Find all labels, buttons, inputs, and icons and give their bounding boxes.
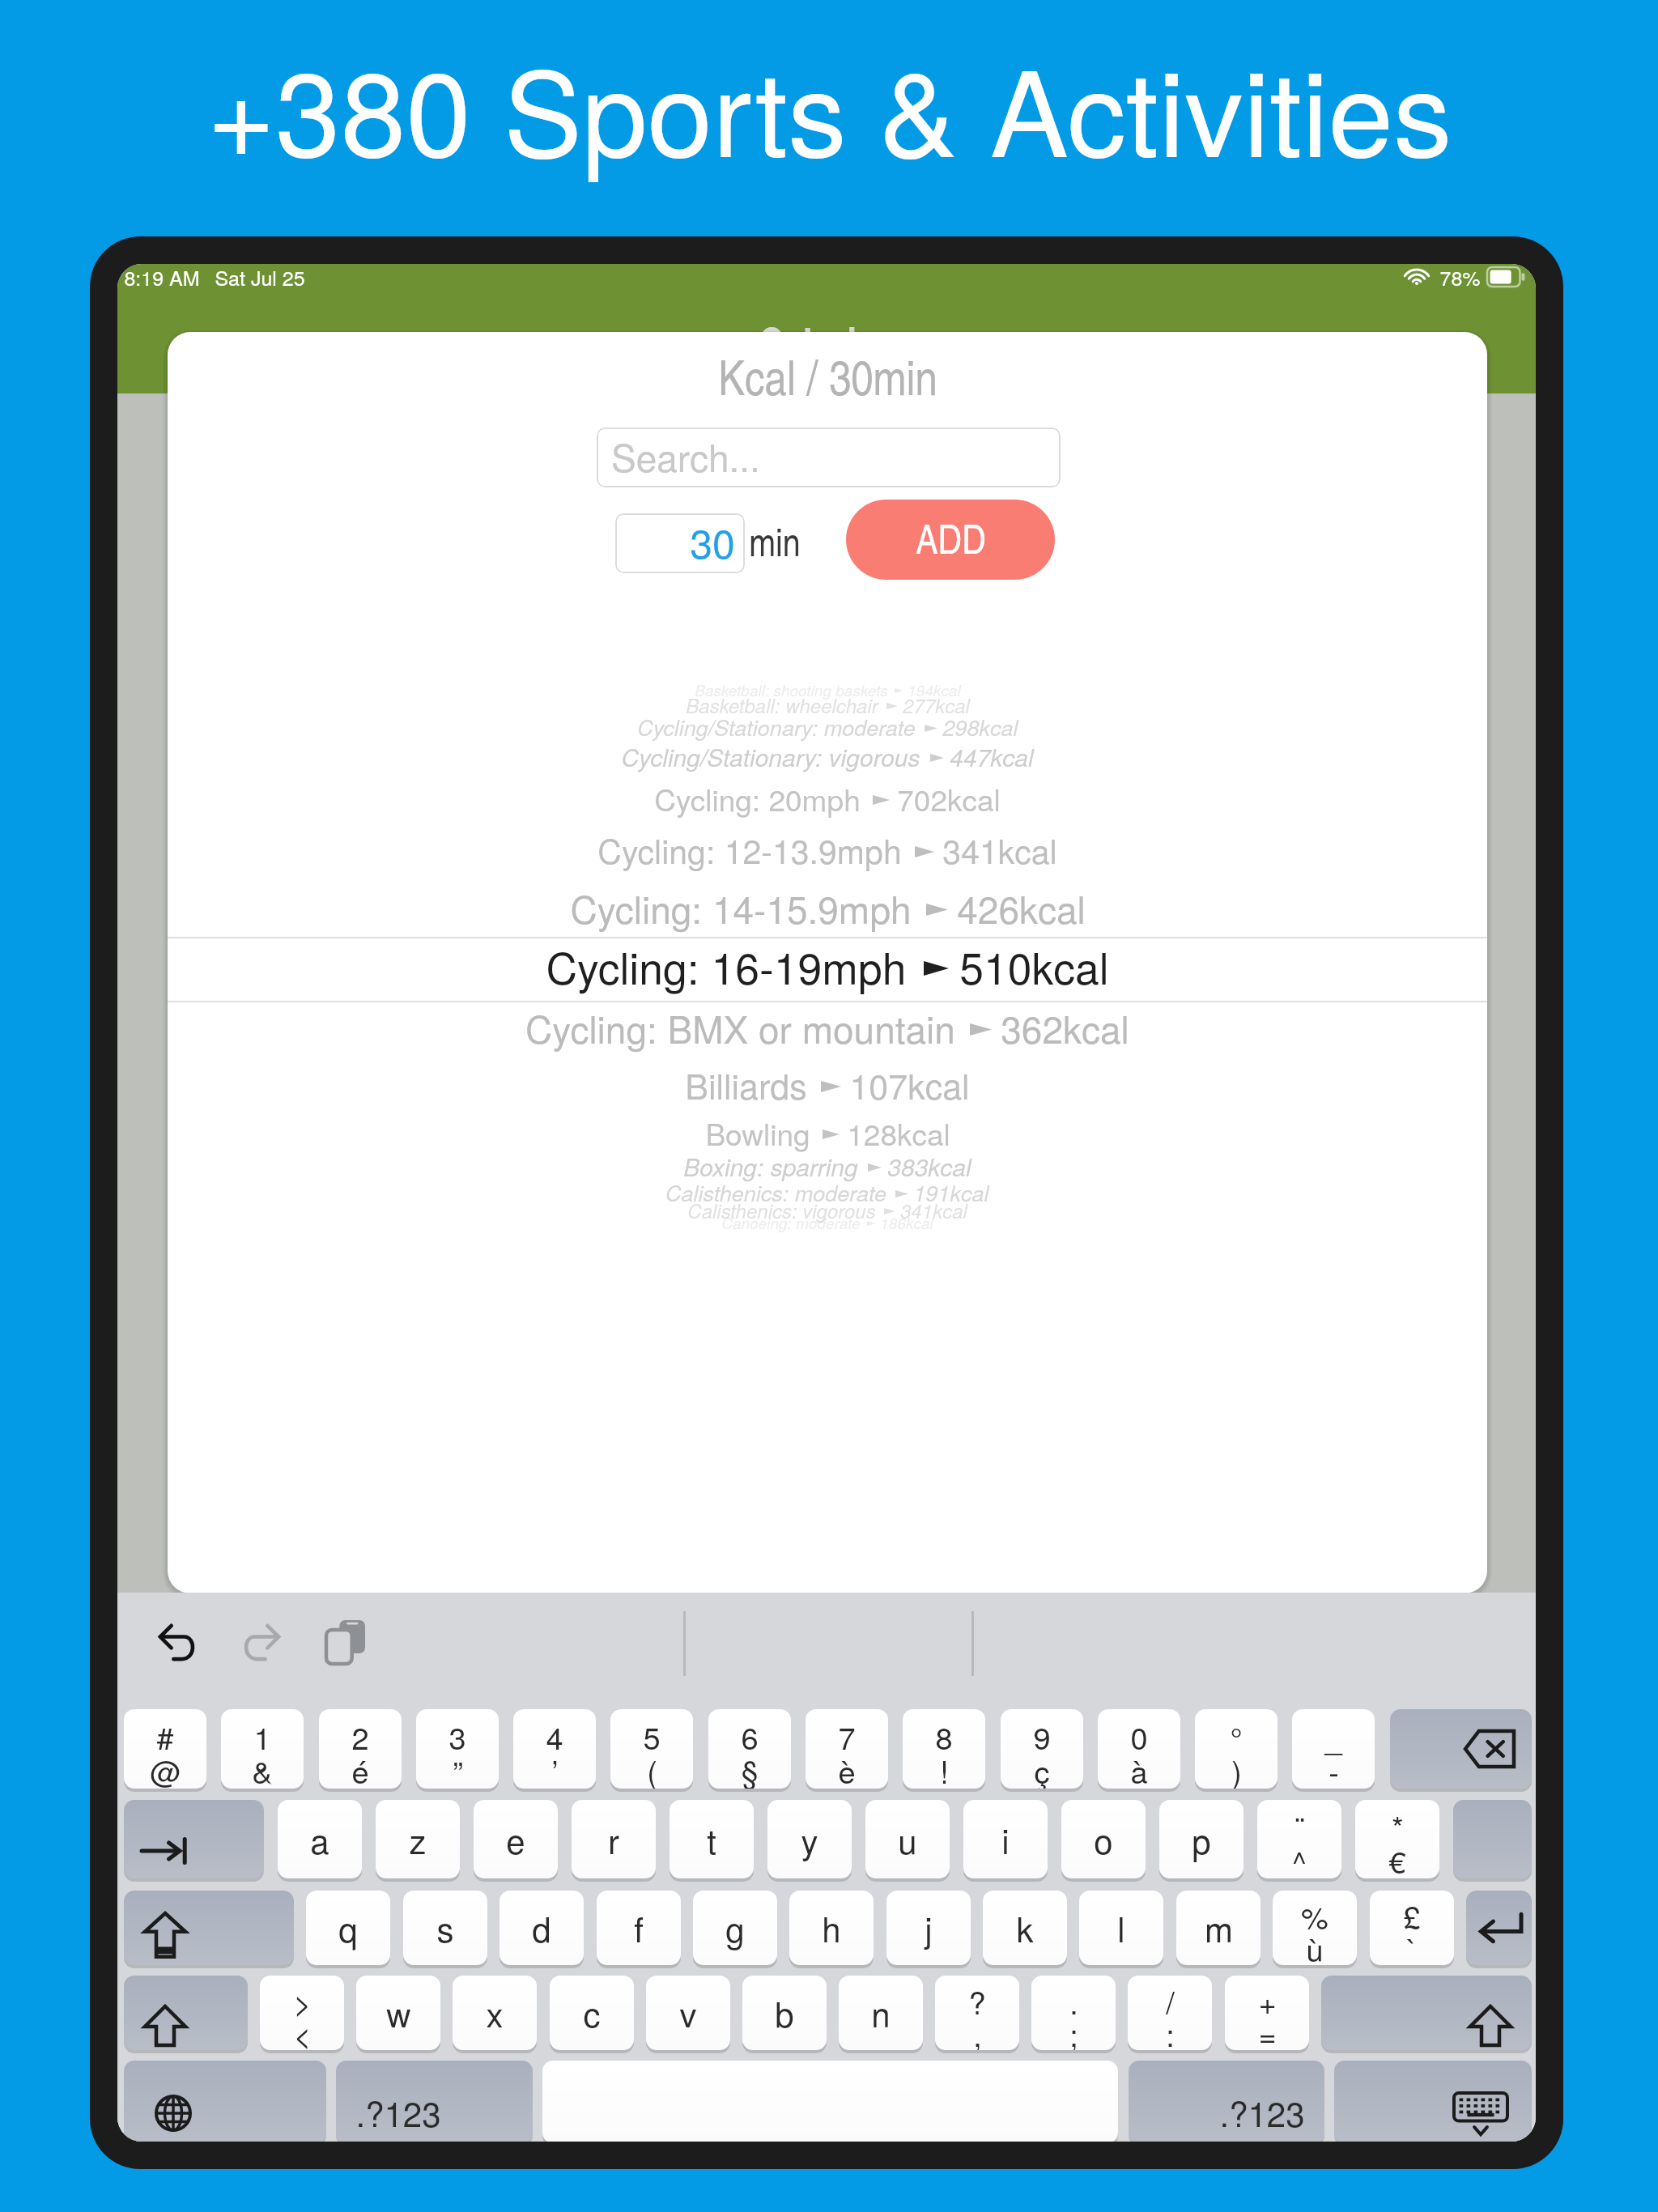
button[interactable]: 0 <box>1098 1709 1180 1789</box>
button[interactable]: Undo <box>145 1613 210 1671</box>
button[interactable]: 5 <box>610 1709 693 1789</box>
staticText: ° <box>1230 1714 1243 1758</box>
button[interactable]: 9 <box>1001 1709 1083 1789</box>
button[interactable]: .?123 <box>336 2061 533 2142</box>
button[interactable]: Shift <box>1321 1976 1532 2050</box>
button[interactable]: ? <box>935 1976 1019 2050</box>
button[interactable]: k <box>983 1891 1067 1965</box>
button[interactable]: .?123 <box>1129 2061 1324 2142</box>
staticText: o <box>1094 1815 1113 1864</box>
button[interactable]: n <box>839 1976 923 2050</box>
staticText: k <box>1016 1904 1034 1952</box>
staticText: Calories <box>759 312 895 371</box>
button[interactable]: j <box>886 1891 971 1965</box>
button[interactable]: o <box>1061 1800 1146 1878</box>
staticText: € <box>1388 1838 1406 1878</box>
button[interactable]: y <box>767 1800 852 1878</box>
staticText: . <box>1069 1979 1078 2023</box>
button[interactable]: f <box>597 1891 681 1965</box>
staticText: 7 <box>838 1714 856 1758</box>
staticText: s <box>436 1904 454 1952</box>
button[interactable]: Return <box>1466 1891 1532 1965</box>
button[interactable]: a <box>278 1800 362 1878</box>
button[interactable]: e <box>474 1800 558 1878</box>
button[interactable]: i <box>963 1800 1048 1878</box>
staticText: 277kcal <box>903 691 970 719</box>
staticText: * <box>1392 1804 1404 1848</box>
button[interactable] <box>1453 1800 1532 1878</box>
button[interactable]: 7 <box>806 1709 888 1789</box>
button[interactable]: * <box>1355 1800 1439 1878</box>
button[interactable]: h <box>789 1891 874 1965</box>
button[interactable]: 3 <box>416 1709 499 1789</box>
button[interactable]: % <box>1273 1891 1357 1965</box>
other: Backspace <box>1390 1709 1532 1789</box>
button[interactable]: ¨ <box>1257 1800 1341 1878</box>
button[interactable]: w <box>356 1976 440 2050</box>
button[interactable]: s <box>403 1891 487 1965</box>
staticText: 194kcal <box>908 679 961 701</box>
button[interactable]: c <box>550 1976 634 2050</box>
staticText: @ <box>150 1748 181 1789</box>
button[interactable]: 4 <box>513 1709 596 1789</box>
button[interactable]: 6 <box>708 1709 791 1789</box>
staticText: 128kcal <box>847 1112 950 1155</box>
button[interactable]: u <box>865 1800 950 1878</box>
button[interactable]: # <box>124 1709 206 1789</box>
button[interactable]: Search... <box>597 428 1061 487</box>
staticText: min <box>749 514 801 568</box>
button[interactable]: r <box>572 1800 656 1878</box>
staticText: = <box>1258 2011 1277 2050</box>
staticText: Sat Jul 25 <box>215 264 305 291</box>
other: Caps lock <box>145 1891 294 1959</box>
staticText: t <box>707 1815 716 1864</box>
button[interactable]: + <box>1225 1976 1309 2050</box>
staticText: ù <box>1306 1926 1324 1965</box>
staticText: % <box>1301 1894 1329 1938</box>
button[interactable]: Hide keyboard <box>1334 2061 1532 2142</box>
button[interactable]: 30 <box>615 513 745 573</box>
button[interactable]: t <box>670 1800 754 1878</box>
button[interactable]: v <box>646 1976 730 2050</box>
button[interactable]: > <box>260 1976 344 2050</box>
staticText: w <box>386 1989 411 2037</box>
button[interactable]: ° <box>1195 1709 1278 1789</box>
button[interactable]: b <box>742 1976 827 2050</box>
button[interactable]: 1 <box>221 1709 304 1789</box>
button[interactable]: 2 <box>319 1709 402 1789</box>
button[interactable]: / <box>1128 1976 1212 2050</box>
button[interactable]: q <box>306 1891 390 1965</box>
button[interactable]: m <box>1176 1891 1261 1965</box>
staticText: 341kcal <box>900 1197 967 1224</box>
staticText: g <box>725 1904 745 1952</box>
button[interactable]: Caps lock <box>124 1891 294 1965</box>
button[interactable]: Shift <box>124 1976 248 2050</box>
staticText: , <box>973 2011 982 2050</box>
button[interactable]: Paste <box>313 1613 378 1671</box>
staticText: 107kcal <box>849 1060 970 1110</box>
staticText: 78% <box>1439 264 1481 291</box>
button[interactable]: p <box>1159 1800 1243 1878</box>
button[interactable]: 8 <box>903 1709 985 1789</box>
button[interactable]: Redo <box>229 1613 294 1671</box>
staticText: 298kcal <box>942 712 1018 742</box>
button[interactable]: z <box>376 1800 460 1878</box>
button[interactable]: ADD <box>846 500 1055 580</box>
staticText: - <box>1329 1748 1339 1789</box>
staticText: 4 <box>546 1714 563 1758</box>
button[interactable]: . <box>1031 1976 1116 2050</box>
button[interactable]: d <box>500 1891 584 1965</box>
staticText: .?123 <box>1219 2088 1305 2137</box>
button[interactable]: Backspace <box>1390 1709 1532 1789</box>
staticText: q <box>338 1904 358 1952</box>
button[interactable]: _ <box>1292 1709 1375 1789</box>
button[interactable]: £ <box>1370 1891 1454 1965</box>
button[interactable]: x <box>453 1976 537 2050</box>
button[interactable]: Tab <box>124 1800 264 1878</box>
staticText: _ <box>1324 1714 1342 1758</box>
button[interactable]: l <box>1079 1891 1163 1965</box>
button[interactable]: g <box>693 1891 777 1965</box>
button[interactable]: Switch keyboard language <box>124 2061 326 2142</box>
other: Switch keyboard language <box>155 2061 326 2132</box>
